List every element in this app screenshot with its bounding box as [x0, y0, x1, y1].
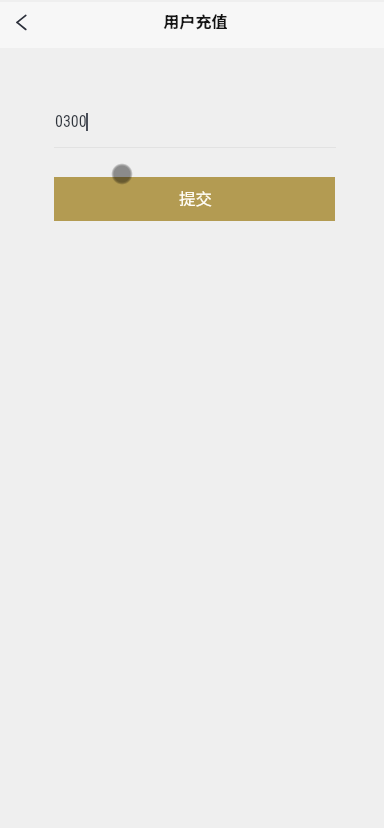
staticText: 提交 — [179, 186, 212, 210]
button[interactable]: Back — [0, 0, 44, 44]
staticText: 0300 — [55, 112, 87, 131]
button[interactable]: 提交 — [54, 177, 335, 221]
button[interactable]: 0300 — [55, 97, 336, 145]
staticText: 用户充值 — [163, 9, 228, 32]
